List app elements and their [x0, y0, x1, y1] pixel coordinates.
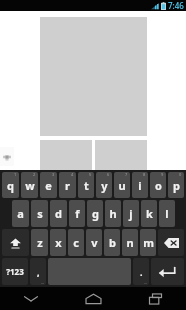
staticText: 7 [125, 172, 128, 177]
staticText: 7:46 [168, 0, 184, 11]
staticText: 1 [14, 172, 17, 177]
button[interactable]: e [40, 172, 57, 198]
staticText: m [143, 235, 154, 250]
button[interactable]: s [31, 200, 48, 227]
staticText: 6 [107, 172, 110, 177]
button[interactable]: h [105, 200, 121, 227]
button[interactable]: u [114, 172, 130, 198]
staticText: ?123 [6, 266, 24, 277]
staticText: h [109, 206, 117, 221]
staticText: l [165, 206, 169, 221]
button[interactable]: Period [133, 258, 149, 285]
button[interactable]: x [50, 229, 66, 256]
staticText: q [7, 178, 14, 193]
staticText: n [126, 235, 134, 250]
staticText: 3 [52, 172, 55, 177]
staticText: , [37, 266, 40, 278]
button[interactable]: f [69, 200, 85, 227]
staticText: i [138, 178, 142, 193]
staticText: x [55, 235, 62, 250]
staticText: g [92, 206, 99, 221]
staticText: t [84, 178, 89, 193]
button[interactable]: a [12, 200, 29, 227]
button[interactable]: Hide keyboard [0, 287, 62, 310]
button[interactable]: c [68, 229, 84, 256]
staticText: y [101, 178, 108, 193]
staticText: … [144, 280, 148, 285]
staticText: f [75, 206, 80, 221]
button[interactable]: i [132, 172, 148, 198]
staticText: 0 [179, 172, 182, 177]
button[interactable]: Home [62, 287, 124, 310]
staticText: … [41, 280, 45, 285]
staticText: 2 [33, 172, 36, 177]
staticText: k [146, 206, 153, 221]
button[interactable]: y [96, 172, 112, 198]
button[interactable]: ?123 [2, 258, 28, 285]
staticText: p [173, 178, 180, 193]
staticText: 9 [161, 172, 164, 177]
button[interactable]: o [150, 172, 166, 198]
button[interactable]: r [59, 172, 76, 198]
button[interactable]: Recent apps [124, 287, 186, 310]
staticText: v [91, 235, 98, 250]
staticText: b [109, 235, 116, 250]
button[interactable]: Shift [2, 229, 29, 256]
button[interactable]: w [21, 172, 38, 198]
button[interactable]: Backspace [158, 229, 184, 256]
button[interactable]: b [104, 229, 120, 256]
staticText: 8 [143, 172, 146, 177]
staticText: c [73, 235, 79, 250]
button[interactable]: g [87, 200, 103, 227]
staticText: . [140, 266, 143, 278]
button[interactable]: Enter [151, 258, 184, 285]
button[interactable]: q [2, 172, 19, 198]
staticText: u [118, 178, 126, 193]
button[interactable]: z [31, 229, 48, 256]
staticText: j [129, 206, 133, 221]
staticText: z [37, 235, 43, 250]
button[interactable]: l [159, 200, 175, 227]
button[interactable]: m [140, 229, 156, 256]
button[interactable]: t [78, 172, 94, 198]
button[interactable]: v [86, 229, 102, 256]
staticText: s [37, 206, 43, 221]
staticText: 4 [71, 172, 74, 177]
button[interactable]: p [168, 172, 184, 198]
staticText: r [65, 178, 70, 193]
staticText: o [155, 178, 162, 193]
staticText: a [17, 206, 24, 221]
button[interactable]: k [141, 200, 157, 227]
button[interactable]: j [123, 200, 139, 227]
staticText: 5 [89, 172, 92, 177]
staticText: e [45, 178, 52, 193]
button[interactable]: Switch input method [0, 147, 14, 166]
staticText: w [25, 178, 35, 193]
button[interactable]: n [122, 229, 138, 256]
staticText: d [55, 206, 62, 221]
button[interactable]: Comma [30, 258, 46, 285]
button[interactable]: d [50, 200, 67, 227]
